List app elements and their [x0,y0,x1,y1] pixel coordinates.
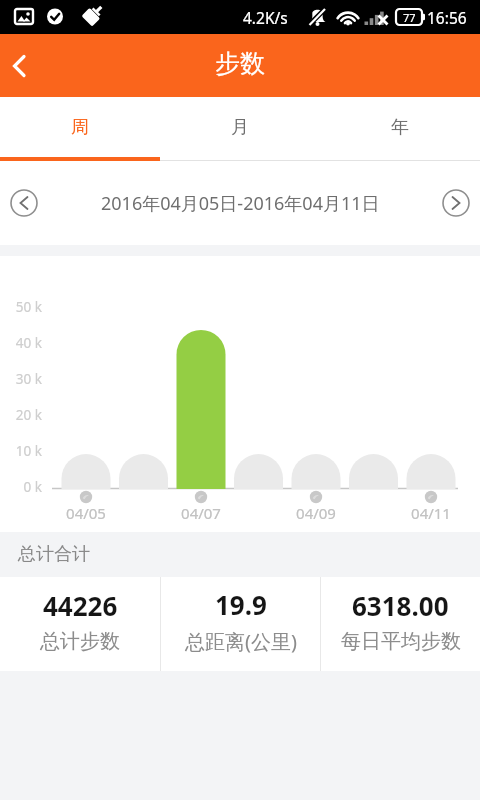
button[interactable]: Previous week [4,183,44,223]
staticText: 04/11 [401,503,461,523]
staticText: 04/09 [286,503,346,523]
staticText: 周 [71,116,89,139]
staticText: 19.9 [215,587,267,622]
staticText: 30 k [0,370,42,388]
button[interactable]: 44226 [0,577,160,671]
staticText: 77 [403,10,416,25]
button[interactable]: Back [0,44,44,88]
staticText: 0 k [0,478,42,496]
staticText: 20 k [0,406,42,424]
staticText: 总距离(公里) [185,628,297,655]
staticText: 04/05 [56,503,116,523]
staticText: 10 k [0,442,42,460]
button[interactable]: Next week [436,183,476,223]
staticText: 每日平均步数 [341,629,461,654]
staticText: 2016年04月05日-2016年04月11日 [101,191,380,216]
staticText: 6318.00 [352,588,449,623]
staticText: 年 [391,116,409,139]
staticText: 4.2K/s [243,7,288,28]
staticText: 总计步数 [40,629,120,654]
button[interactable]: 周 [0,97,160,161]
staticText: 月 [231,116,249,139]
staticText: 总计合计 [18,543,90,566]
staticText: 40 k [0,334,42,352]
staticText: 16:56 [427,7,467,28]
staticText: 44226 [43,588,118,623]
button[interactable]: 年 [320,97,480,161]
staticText: 50 k [0,298,42,316]
staticText: 04/07 [171,503,231,523]
staticText: 步数 [215,48,265,79]
button[interactable]: 6318.00 [321,577,480,671]
button[interactable]: 月 [160,97,320,161]
button[interactable]: 19.9 [161,577,320,671]
